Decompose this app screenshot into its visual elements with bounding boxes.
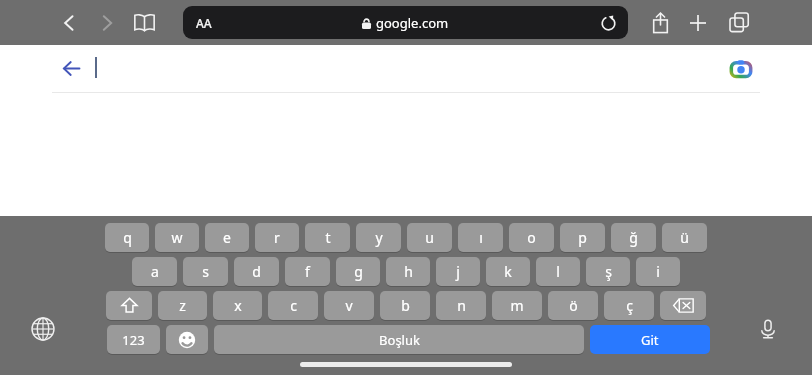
staticText: f — [305, 262, 310, 281]
button[interactable]: AA — [183, 6, 628, 39]
button[interactable]: ğ — [611, 223, 656, 252]
staticText: h — [404, 262, 413, 281]
staticText: ı — [479, 228, 483, 247]
button[interactable]: p — [560, 223, 605, 252]
button[interactable]: n — [436, 291, 486, 320]
staticText: p — [578, 228, 587, 247]
button[interactable]: Forward — [90, 0, 124, 45]
button[interactable]: h — [386, 257, 430, 286]
staticText: r — [274, 228, 280, 247]
button[interactable]: Bookmarks — [126, 0, 162, 45]
button[interactable]: ş — [586, 257, 630, 286]
staticText: x — [234, 296, 242, 315]
staticText: y — [375, 228, 383, 247]
button[interactable]: d — [234, 257, 279, 286]
staticText: k — [504, 262, 512, 281]
button[interactable]: Back — [54, 45, 88, 92]
staticText: o — [527, 228, 536, 247]
button[interactable]: Tabs — [722, 0, 756, 45]
staticText: l — [556, 262, 560, 281]
button[interactable]: i — [636, 257, 680, 286]
staticText: ş — [605, 262, 612, 281]
button[interactable]: b — [380, 291, 430, 320]
button[interactable]: s — [183, 257, 228, 286]
button[interactable]: 123 — [107, 325, 160, 354]
staticText: v — [345, 296, 353, 315]
button[interactable]: ı — [458, 223, 503, 252]
button[interactable]: ü — [662, 223, 707, 252]
staticText: ğ — [629, 228, 638, 247]
button[interactable]: z — [158, 291, 207, 320]
staticText: g — [354, 262, 363, 281]
staticText: b — [401, 296, 410, 315]
staticText: Git — [641, 331, 659, 349]
button[interactable]: c — [268, 291, 318, 320]
staticText: ç — [626, 296, 633, 315]
button[interactable]: Reload — [596, 11, 620, 35]
staticText: ö — [569, 296, 578, 315]
button[interactable]: f — [285, 257, 330, 286]
button[interactable]: Search by image — [726, 54, 756, 84]
staticText: Boşluk — [379, 331, 420, 349]
button[interactable]: w — [155, 223, 199, 252]
button[interactable]: j — [436, 257, 480, 286]
button[interactable]: m — [492, 291, 542, 320]
staticText: ü — [680, 228, 689, 247]
button[interactable]: v — [324, 291, 374, 320]
button[interactable]: Back — [52, 0, 86, 45]
staticText: u — [425, 228, 434, 247]
staticText: w — [171, 228, 183, 247]
staticText: AA — [196, 15, 212, 31]
button[interactable]: t — [305, 223, 350, 252]
button[interactable]: New Tab — [682, 0, 714, 45]
staticText: z — [179, 296, 186, 315]
button[interactable]: l — [536, 257, 580, 286]
button[interactable]: e — [205, 223, 249, 252]
staticText: n — [457, 296, 466, 315]
staticText: m — [510, 296, 524, 315]
staticText: c — [290, 296, 297, 315]
button[interactable]: x — [213, 291, 262, 320]
button[interactable]: q — [105, 223, 149, 252]
staticText: e — [223, 228, 231, 247]
staticText: a — [151, 262, 159, 281]
button[interactable]: u — [407, 223, 452, 252]
staticText: i — [656, 262, 660, 281]
staticText: s — [202, 262, 209, 281]
staticText: google.com — [376, 14, 449, 32]
staticText: q — [123, 228, 132, 247]
staticText: t — [325, 228, 331, 247]
button[interactable]: ç — [604, 291, 654, 320]
button[interactable]: ö — [548, 291, 598, 320]
staticText: j — [456, 262, 460, 281]
button[interactable]: y — [356, 223, 401, 252]
button[interactable]: Shift — [106, 291, 152, 320]
button[interactable]: Backspace — [660, 291, 706, 320]
button[interactable]: o — [509, 223, 554, 252]
button[interactable]: Share — [644, 0, 676, 45]
button[interactable]: Emoji — [166, 325, 208, 354]
button[interactable]: Voice input — [752, 313, 784, 345]
staticText: d — [252, 262, 261, 281]
button[interactable]: g — [336, 257, 380, 286]
staticText: 123 — [122, 331, 145, 349]
button[interactable]: a — [132, 257, 177, 286]
button[interactable]: k — [486, 257, 530, 286]
button[interactable]: Git — [590, 325, 710, 354]
button[interactable]: Change keyboard — [27, 313, 59, 345]
button[interactable]: r — [255, 223, 299, 252]
button[interactable]: Boşluk — [214, 325, 584, 354]
